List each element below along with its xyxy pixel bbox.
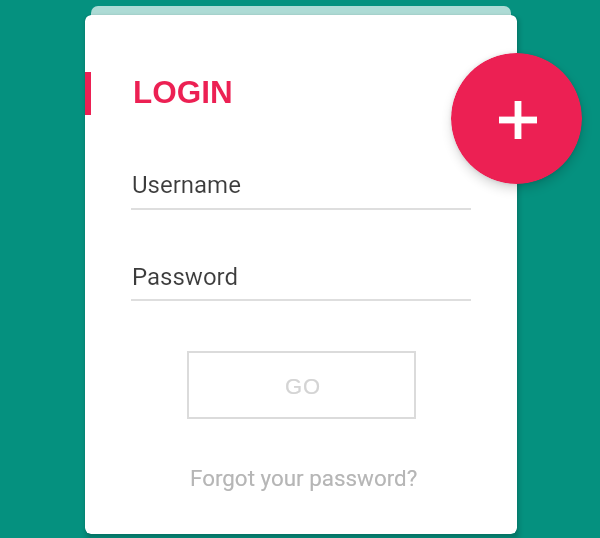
staticText: Username bbox=[132, 171, 241, 199]
button[interactable]: Forgot your password? bbox=[158, 454, 450, 502]
staticText: LOGIN bbox=[133, 74, 233, 109]
button[interactable]: Username bbox=[131, 165, 471, 210]
staticText: GO bbox=[285, 374, 321, 399]
button[interactable]: Add bbox=[451, 53, 582, 184]
button[interactable]: Password bbox=[131, 257, 471, 302]
staticText: Password bbox=[132, 263, 239, 291]
button[interactable]: GO bbox=[187, 351, 416, 419]
staticText: Forgot your password? bbox=[190, 465, 418, 491]
